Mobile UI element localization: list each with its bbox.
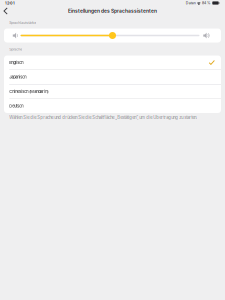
button[interactable]: Japanisch [4,70,221,84]
staticText: Chinesisch (Mandarin) [9,89,48,94]
staticText: Daten [186,1,196,5]
staticText: 12:01 [5,1,15,5]
staticText: 84 % [202,1,211,5]
button[interactable]: Deutsch [4,99,221,113]
staticText: Englisch [9,60,23,65]
staticText: Deutsch [9,104,23,108]
button[interactable]: Zurück [0,5,11,17]
staticText: Japanisch [9,75,26,79]
staticText: Sprachlautstärke [9,21,36,25]
staticText: Sprache [9,47,22,51]
staticText: Einstellungen des Sprachassistenten [68,8,157,14]
button[interactable]: Chinesisch (Mandarin) [4,84,221,98]
staticText: Wählen Sie die Sprache und drücken Sie d… [9,115,197,120]
button[interactable]: Englisch [4,55,221,69]
